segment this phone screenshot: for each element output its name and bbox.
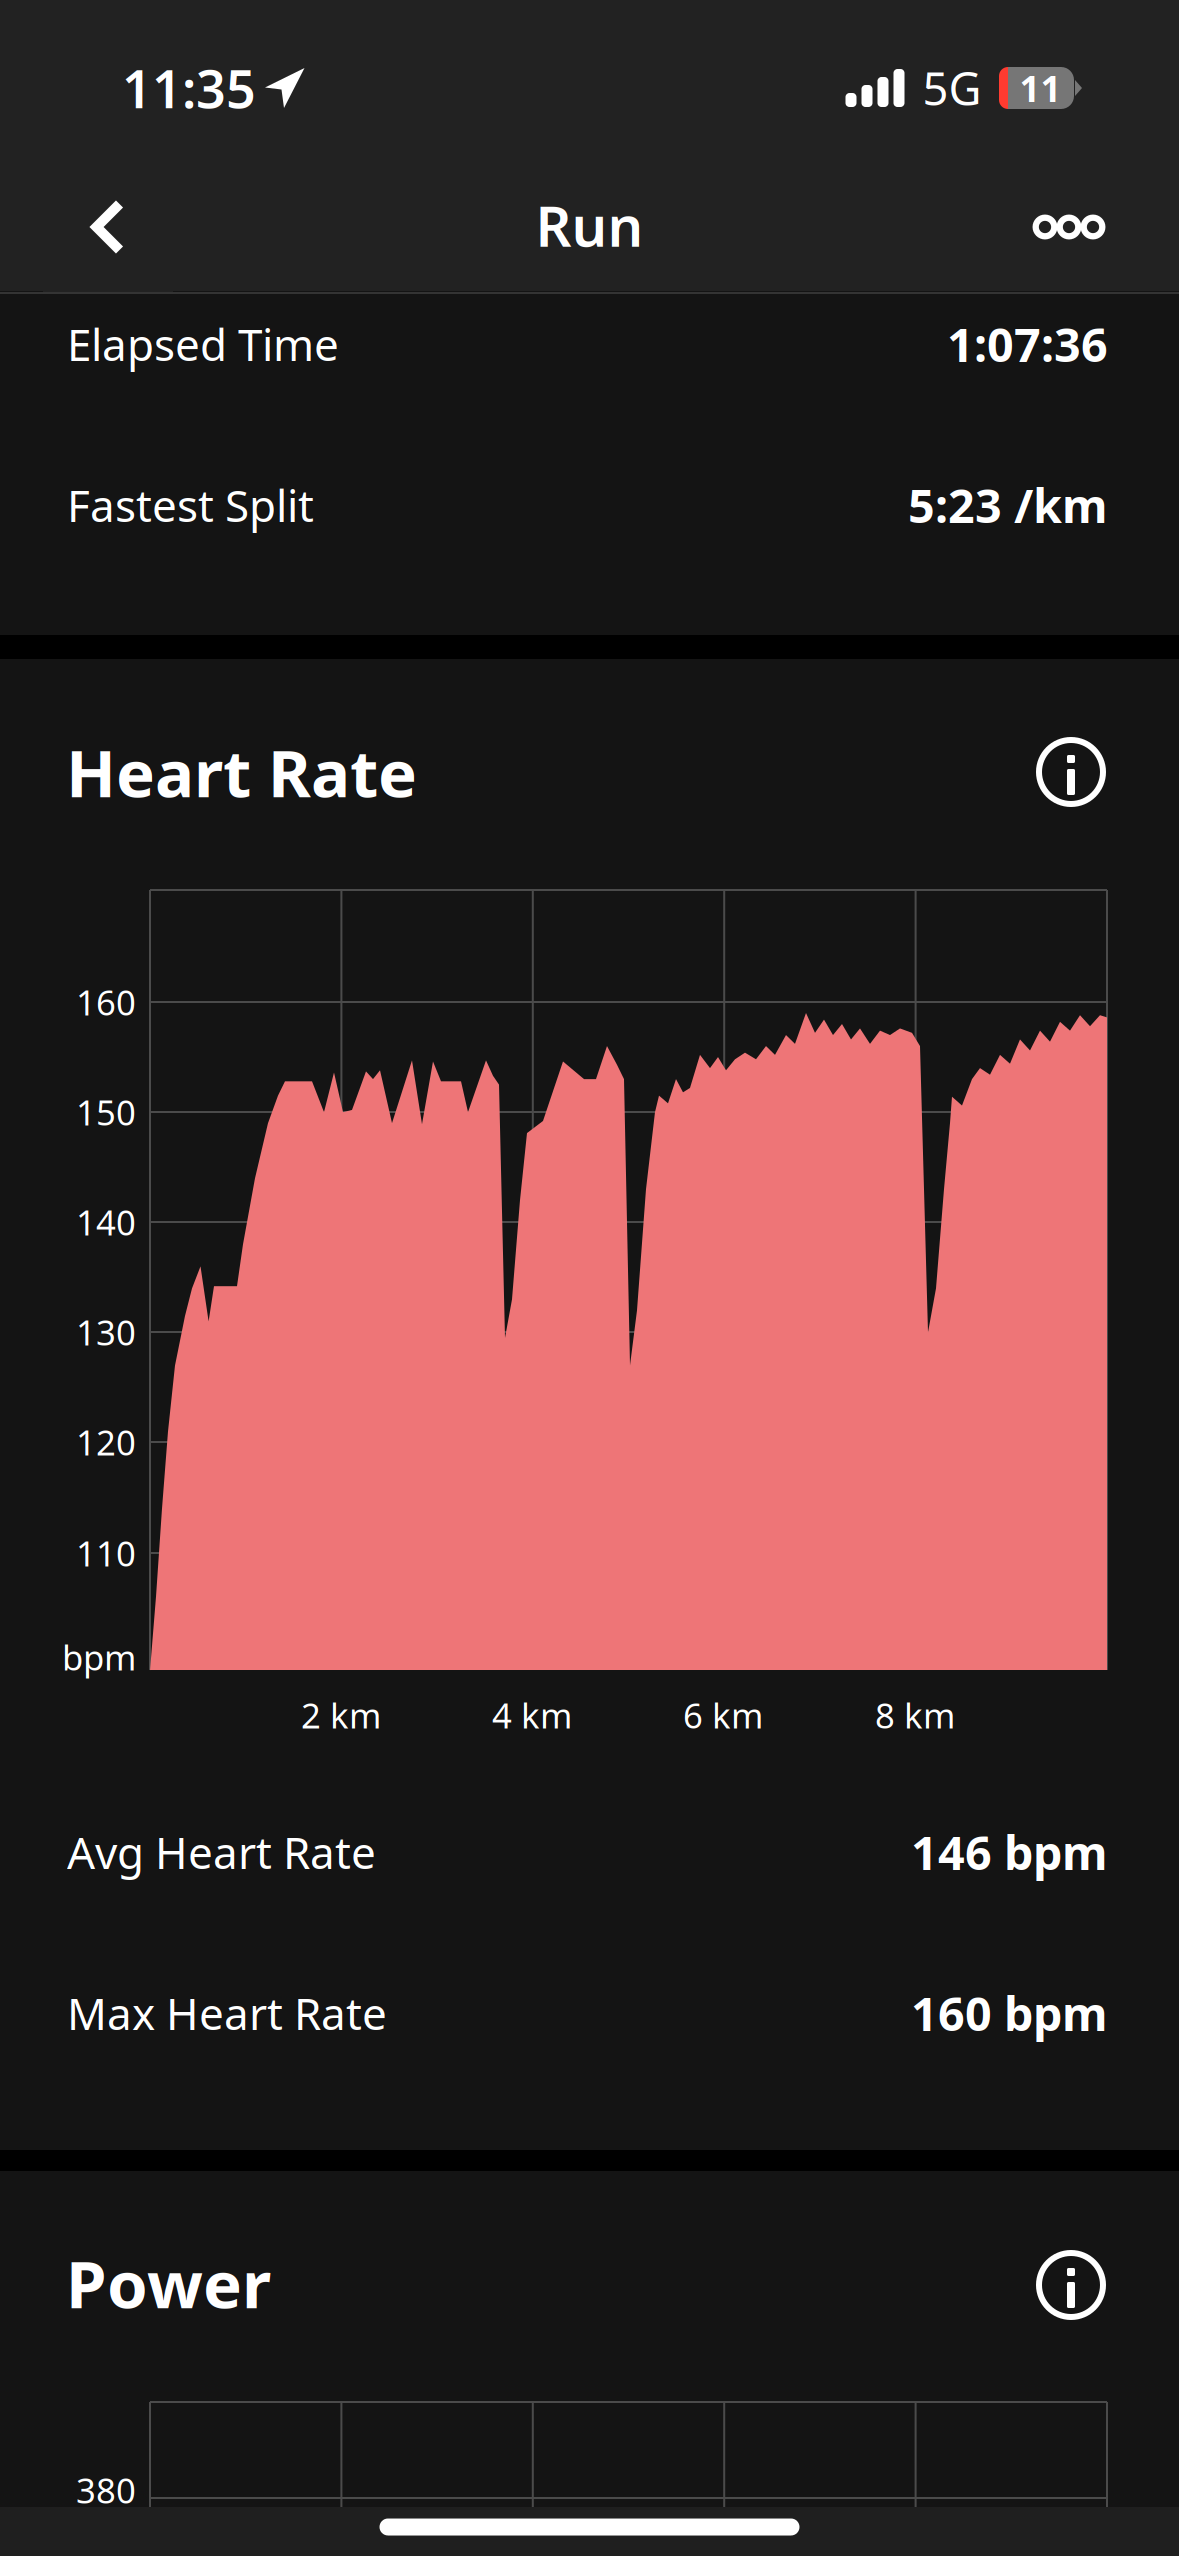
staticText: Power: [66, 2240, 271, 2326]
button[interactable]: Avg Heart Rate: [0, 1771, 1179, 1932]
staticText: 140: [76, 1199, 136, 1245]
staticText: 380: [76, 2467, 136, 2513]
staticText: bpm: [62, 1634, 136, 1680]
button[interactable]: More options: [994, 167, 1144, 287]
button[interactable]: About power: [1011, 2225, 1131, 2345]
staticText: 150: [76, 1089, 136, 1135]
staticText: 1:07:36: [947, 313, 1108, 375]
staticText: Elapsed Time: [67, 315, 339, 373]
staticText: Avg Heart Rate: [67, 1823, 376, 1881]
staticText: Max Heart Rate: [67, 1984, 387, 2042]
staticText: 11: [1019, 64, 1061, 112]
staticText: 11:35: [122, 53, 256, 123]
staticText: Run: [535, 188, 643, 262]
staticText: Fastest Split: [67, 476, 314, 534]
staticText: Heart Rate: [66, 729, 417, 815]
button[interactable]: About heart rate: [1011, 712, 1131, 832]
staticText: 130: [76, 1309, 136, 1355]
staticText: 4 km: [492, 1692, 572, 1738]
staticText: 2 km: [301, 1692, 381, 1738]
button[interactable]: Elapsed Time: [0, 263, 1179, 424]
staticText: 5G: [922, 58, 981, 118]
staticText: 5:23 /km: [908, 474, 1108, 536]
staticText: 146 bpm: [911, 1821, 1108, 1883]
staticText: 6 km: [683, 1692, 763, 1738]
button[interactable]: Max Heart Rate: [0, 1932, 1179, 2093]
staticText: 160 bpm: [911, 1982, 1108, 2044]
staticText: 120: [76, 1419, 136, 1465]
staticText: 8 km: [875, 1692, 955, 1738]
staticText: 160: [76, 979, 136, 1025]
staticText: 110: [76, 1530, 136, 1576]
button[interactable]: Back: [43, 162, 173, 292]
button[interactable]: Fastest Split: [0, 424, 1179, 585]
